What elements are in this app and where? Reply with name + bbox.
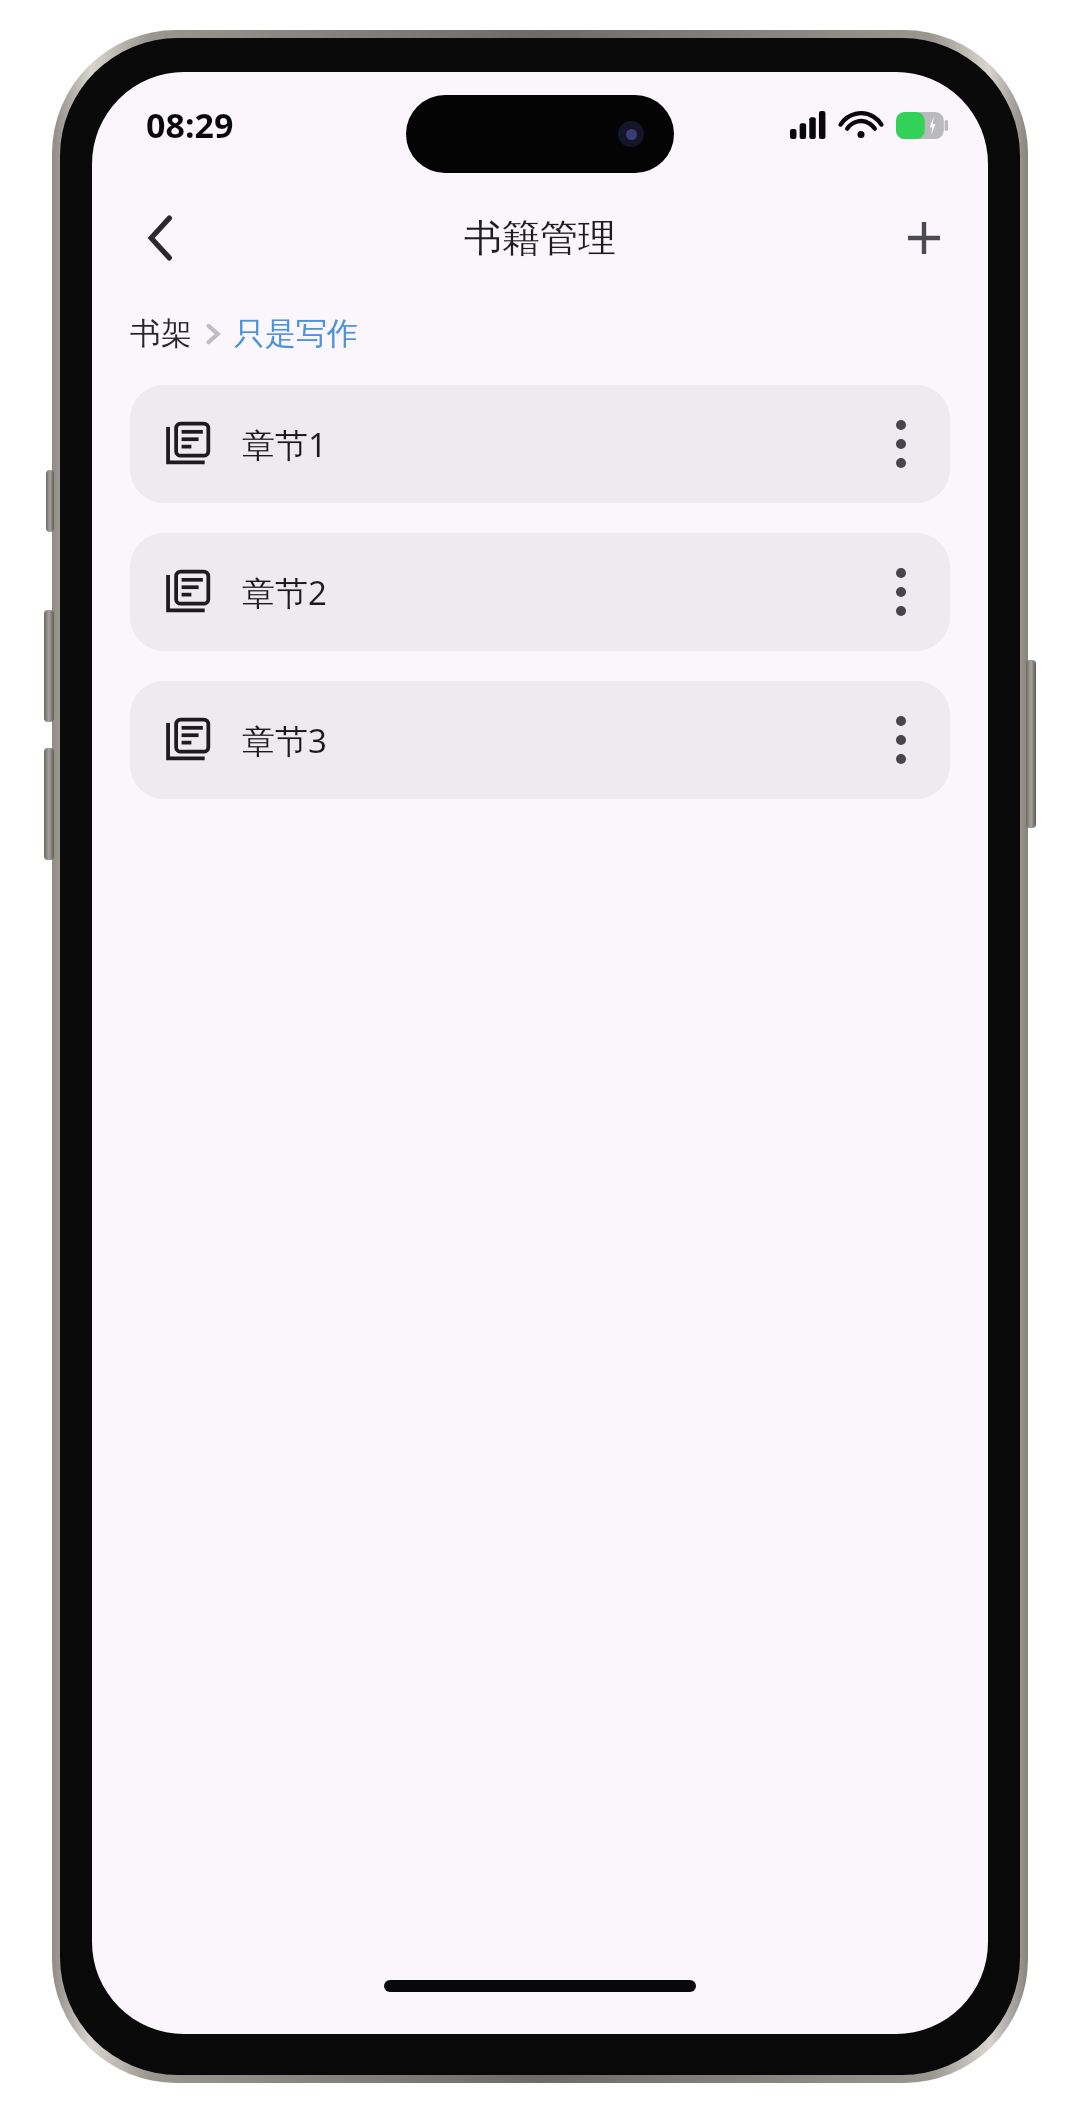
button[interactable]: 书架 [130,314,192,353]
button[interactable]: More options [858,681,944,799]
button[interactable]: More options [858,533,944,651]
button[interactable]: More options [858,385,944,503]
button[interactable]: 章节3 [130,681,950,799]
staticText: 章节2 [242,570,858,615]
staticText: 只是写作 [234,314,358,353]
staticText: 书籍管理 [464,214,616,262]
staticText: 章节1 [242,422,858,467]
button[interactable]: Add [882,196,966,280]
button[interactable]: 只是写作 [234,314,358,353]
button[interactable]: 章节1 [130,385,950,503]
staticText: 书架 [130,314,192,353]
button[interactable]: Back [118,196,202,280]
staticText: 08:29 [146,102,234,148]
staticText: 章节3 [242,718,858,763]
button[interactable]: 章节2 [130,533,950,651]
